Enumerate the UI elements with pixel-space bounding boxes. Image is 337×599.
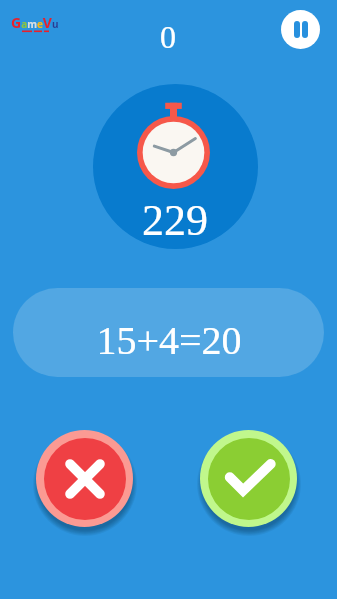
- staticText: 15+4=20: [96, 318, 242, 362]
- staticText: GameVui: [11, 13, 61, 33]
- staticText: 229: [142, 196, 208, 245]
- button[interactable]: GameVui home: [11, 13, 61, 33]
- staticText: 0: [160, 19, 176, 54]
- button[interactable]: Pause: [281, 10, 320, 49]
- button[interactable]: Wrong answer: [36, 430, 133, 527]
- button[interactable]: Correct answer: [200, 430, 297, 527]
- button[interactable]: 15+4=20: [13, 288, 324, 377]
